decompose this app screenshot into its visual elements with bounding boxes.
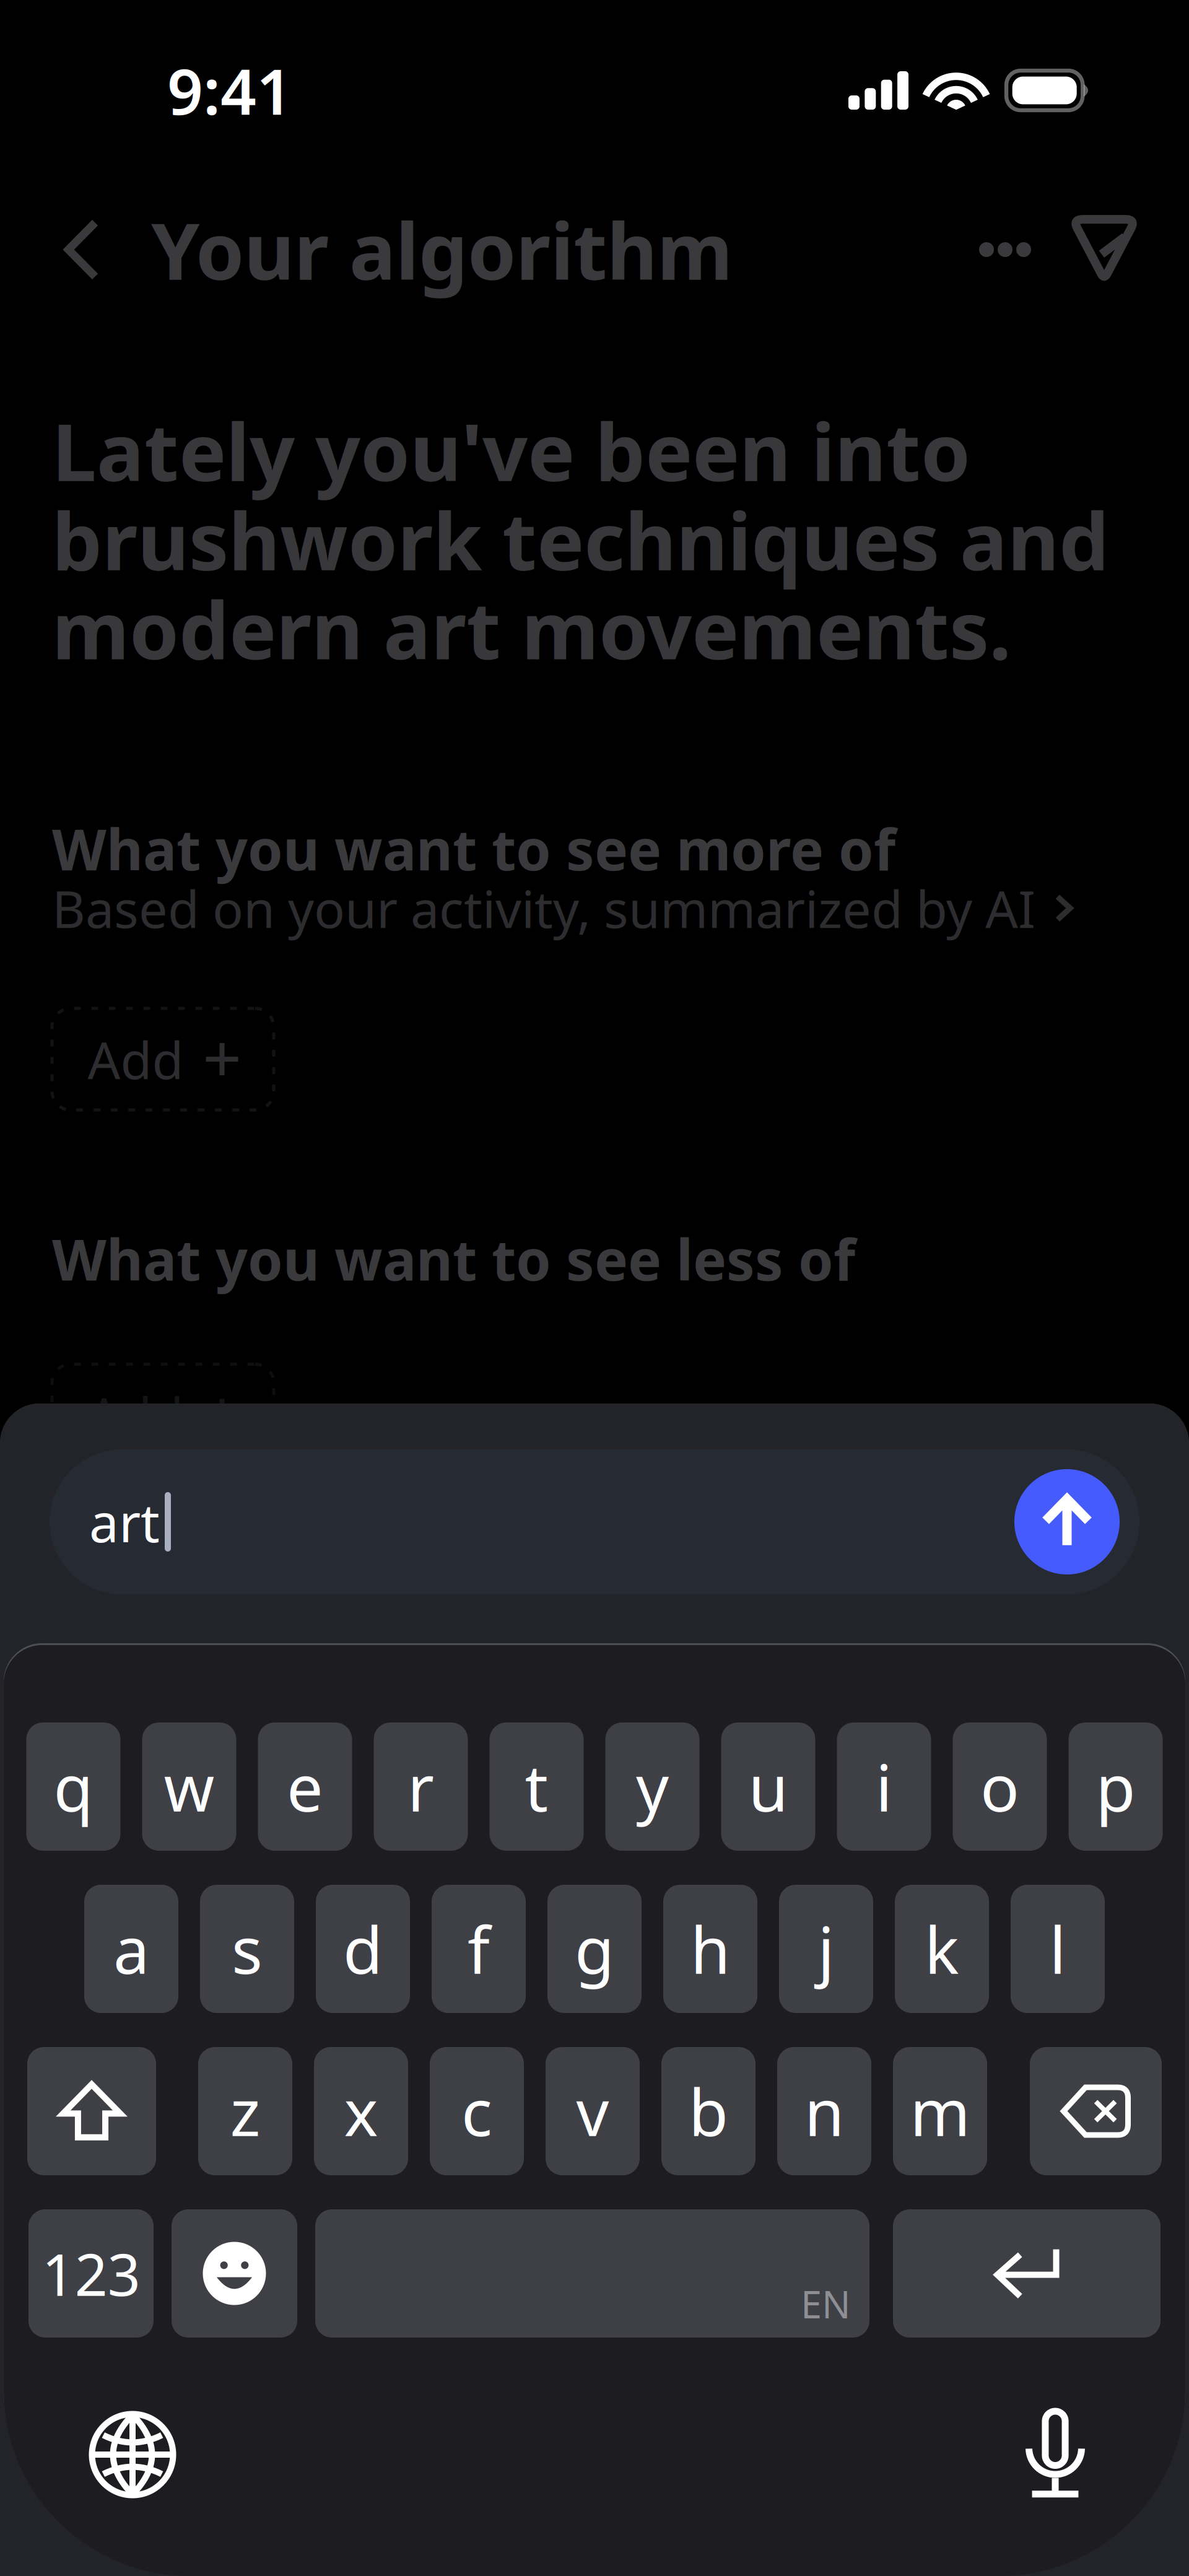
button[interactable]: b xyxy=(661,2047,756,2175)
button[interactable]: Send xyxy=(1014,1469,1120,1574)
staticText: f xyxy=(468,1906,490,1992)
button[interactable]: Space xyxy=(315,2209,869,2338)
button[interactable]: e xyxy=(258,1722,352,1851)
staticText: i xyxy=(876,1744,892,1829)
button[interactable]: q xyxy=(26,1722,120,1851)
staticText: p xyxy=(1096,1744,1135,1829)
button[interactable]: Share xyxy=(1070,209,1138,290)
button[interactable]: s xyxy=(200,1885,294,2013)
staticText: t xyxy=(525,1744,548,1829)
button[interactable]: i xyxy=(837,1722,931,1851)
staticText: h xyxy=(690,1906,730,1992)
staticText: g xyxy=(575,1906,614,1992)
staticText: Add xyxy=(88,1025,184,1093)
button[interactable]: o xyxy=(953,1722,1047,1851)
staticText: n xyxy=(804,2068,844,2154)
staticText: r xyxy=(407,1744,434,1829)
button[interactable]: More options xyxy=(971,209,1039,290)
staticText: z xyxy=(230,2068,260,2154)
staticText: o xyxy=(980,1744,1019,1829)
button[interactable]: j xyxy=(779,1885,873,2013)
button[interactable]: v xyxy=(546,2047,640,2175)
button[interactable]: g xyxy=(547,1885,642,2013)
staticText: e xyxy=(287,1744,323,1829)
staticText: m xyxy=(910,2068,970,2154)
staticText: u xyxy=(748,1744,788,1829)
button[interactable]: l xyxy=(1011,1885,1105,2013)
staticText: What you want to see less of xyxy=(52,1221,855,1296)
button[interactable]: t xyxy=(490,1722,584,1851)
staticText: a xyxy=(113,1906,149,1992)
button[interactable]: z xyxy=(198,2047,292,2175)
staticText: Your algorithm xyxy=(151,198,733,301)
staticText: 123 xyxy=(42,2235,140,2312)
staticText: w xyxy=(164,1744,215,1829)
staticText: 9:41 xyxy=(167,49,292,132)
button[interactable]: m xyxy=(893,2047,987,2175)
button[interactable]: r xyxy=(374,1722,468,1851)
staticText: b xyxy=(689,2068,728,2154)
button[interactable]: Dictate xyxy=(1000,2399,1111,2510)
staticText: d xyxy=(343,1906,383,1992)
button[interactable]: Delete xyxy=(1030,2047,1162,2175)
button[interactable]: Add xyxy=(52,1364,274,1466)
button[interactable]: x xyxy=(314,2047,408,2175)
staticText: k xyxy=(925,1906,959,1992)
staticText: art xyxy=(89,1487,160,1557)
staticText: What you want to see more of xyxy=(52,811,895,886)
button[interactable]: n xyxy=(777,2047,871,2175)
button[interactable]: a xyxy=(84,1885,178,2013)
button[interactable]: f xyxy=(432,1885,526,2013)
staticText: c xyxy=(461,2068,492,2154)
staticText: v xyxy=(576,2068,609,2154)
staticText: Lately you've been into brushwork techni… xyxy=(52,398,1109,681)
button[interactable]: Shift xyxy=(27,2047,156,2175)
button[interactable]: 123 xyxy=(28,2209,154,2338)
staticText: l xyxy=(1049,1906,1066,1992)
staticText: Add xyxy=(88,1381,184,1449)
button[interactable]: Switch keyboard xyxy=(77,2399,188,2510)
button[interactable]: p xyxy=(1069,1722,1163,1851)
staticText: x xyxy=(344,2068,378,2154)
button[interactable]: Emoji xyxy=(172,2209,297,2338)
button[interactable]: Add xyxy=(52,1008,274,1110)
button[interactable]: k xyxy=(895,1885,989,2013)
button[interactable]: u xyxy=(721,1722,815,1851)
button[interactable]: h xyxy=(663,1885,757,2013)
staticText: q xyxy=(54,1744,93,1829)
staticText: j xyxy=(818,1906,834,1992)
button[interactable]: d xyxy=(316,1885,410,2013)
staticText: y xyxy=(636,1744,669,1829)
button[interactable]: Return xyxy=(893,2209,1161,2338)
button[interactable]: c xyxy=(430,2047,524,2175)
staticText: Based on your activity, summarized by AI xyxy=(52,874,1035,942)
staticText: EN xyxy=(801,2278,851,2329)
staticText: s xyxy=(232,1906,263,1992)
button[interactable]: Back xyxy=(51,206,113,293)
button[interactable]: w xyxy=(142,1722,236,1851)
button[interactable]: y xyxy=(605,1722,699,1851)
